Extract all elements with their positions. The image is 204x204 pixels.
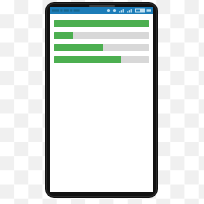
button[interactable]: Progress 20 percent: [54, 32, 149, 39]
button[interactable]: Progress 52 percent: [54, 44, 149, 51]
button[interactable]: Progress 70 percent: [54, 56, 149, 63]
